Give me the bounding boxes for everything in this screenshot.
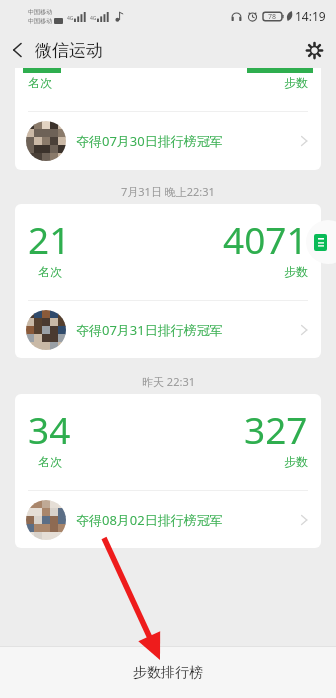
- staticText: 昨天 22:31: [142, 374, 195, 389]
- staticText: 34: [28, 404, 71, 454]
- button[interactable]: 夺得07月30日排行榜冠军: [15, 112, 321, 169]
- button[interactable]: 名次: [15, 68, 321, 170]
- staticText: 步数: [284, 75, 308, 90]
- staticText: 21: [28, 214, 71, 264]
- staticText: 中国移动: [28, 17, 52, 25]
- staticText: 327: [244, 404, 308, 454]
- staticText: 4071: [223, 214, 308, 264]
- button[interactable]: 夺得07月31日排行榜冠军: [15, 301, 321, 358]
- button[interactable]: 步数排行榜: [109, 656, 227, 690]
- button[interactable]: 21: [15, 204, 321, 358]
- staticText: 名次: [38, 454, 62, 469]
- staticText: 4G: [90, 15, 97, 22]
- button[interactable]: 34: [15, 394, 321, 548]
- staticText: 步数: [284, 264, 308, 279]
- button[interactable]: Shortcut: [306, 220, 336, 264]
- staticText: 中国移动: [28, 8, 52, 16]
- staticText: 4G: [67, 15, 74, 22]
- button[interactable]: 夺得08月02日排行榜冠军: [15, 491, 321, 548]
- staticText: 7月31日 晚上22:31: [121, 184, 215, 199]
- staticText: 夺得08月02日排行榜冠军: [76, 511, 223, 529]
- staticText: 夺得07月31日排行榜冠军: [76, 321, 223, 339]
- button[interactable]: Back: [0, 35, 35, 65]
- button[interactable]: Settings: [293, 35, 336, 66]
- staticText: 14:19: [295, 8, 326, 24]
- staticText: 名次: [38, 264, 62, 279]
- staticText: 微信运动: [35, 40, 103, 61]
- staticText: 78: [268, 12, 277, 22]
- staticText: 夺得07月30日排行榜冠军: [76, 132, 223, 150]
- staticText: 名次: [28, 75, 52, 90]
- staticText: 步数: [284, 454, 308, 469]
